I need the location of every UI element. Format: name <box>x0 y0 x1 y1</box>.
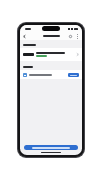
button[interactable] <box>20 70 82 79</box>
button[interactable] <box>20 48 82 61</box>
button[interactable]: Scan <box>68 34 73 39</box>
button[interactable] <box>24 145 78 150</box>
button[interactable] <box>68 73 79 77</box>
button[interactable]: Back <box>21 33 27 39</box>
button[interactable]: More options <box>75 34 80 39</box>
